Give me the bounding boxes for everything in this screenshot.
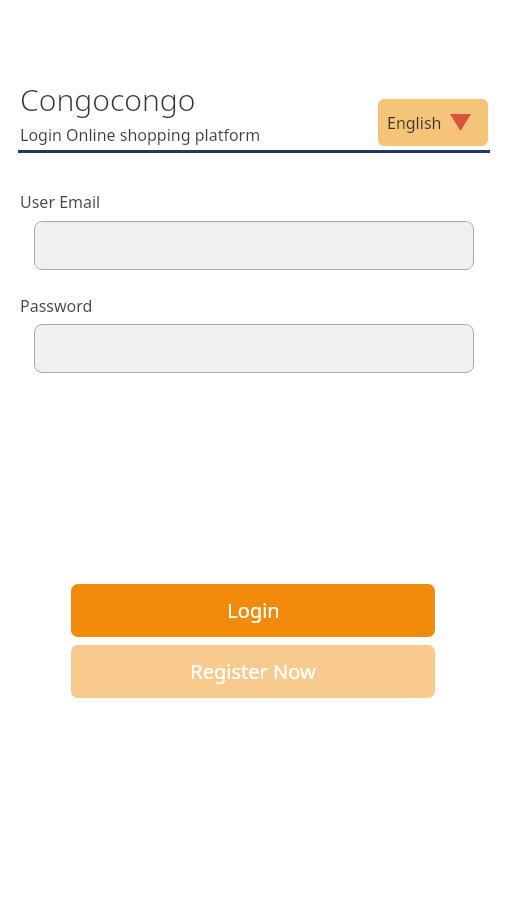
button[interactable]: Register Now bbox=[71, 645, 435, 698]
button[interactable]: Login bbox=[71, 584, 435, 637]
button[interactable]: English bbox=[378, 99, 488, 146]
staticText: Congocongo bbox=[20, 79, 196, 120]
staticText: Login Online shopping platform bbox=[20, 124, 261, 146]
button[interactable]: Password input field bbox=[34, 324, 474, 373]
button[interactable]: User email input field bbox=[34, 221, 474, 270]
staticText: English bbox=[387, 112, 442, 134]
staticText: Register Now bbox=[190, 658, 316, 685]
staticText: Password bbox=[20, 295, 93, 317]
staticText: Login bbox=[227, 597, 280, 624]
staticText: User Email bbox=[20, 191, 101, 213]
